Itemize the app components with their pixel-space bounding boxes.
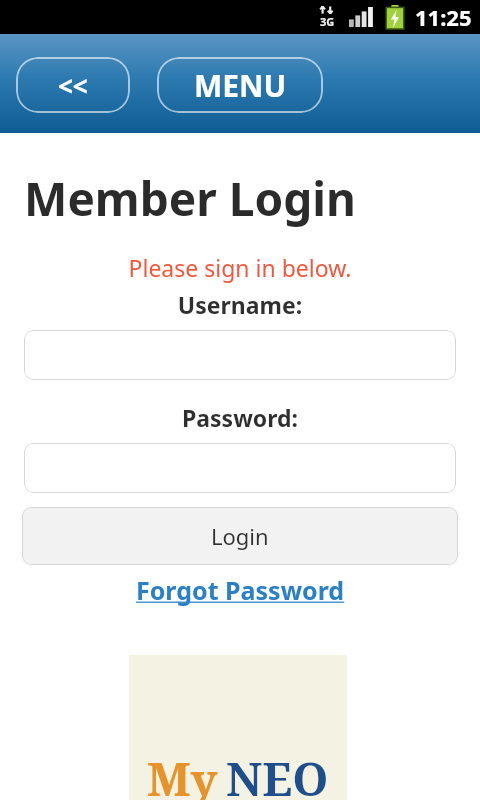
staticText: Password: [0, 402, 480, 433]
staticText: MENU [194, 65, 287, 106]
staticText: 11:25 [415, 2, 472, 32]
staticText: Member Login [24, 167, 356, 230]
staticText: My [147, 747, 218, 800]
staticText: 3G [320, 14, 335, 29]
button[interactable]: Back [16, 57, 130, 113]
button[interactable]: Login [22, 507, 458, 565]
staticText: Username: [0, 289, 480, 320]
button[interactable] [24, 330, 456, 380]
staticText: << [58, 68, 88, 103]
staticText: Forgot Password [136, 573, 345, 607]
button[interactable]: MENU [157, 57, 323, 113]
staticText: NEO [226, 747, 329, 800]
button[interactable]: Forgot Password [136, 573, 345, 607]
staticText: Please sign in below. [0, 252, 480, 283]
staticText: Login [211, 521, 269, 551]
button[interactable] [24, 443, 456, 493]
